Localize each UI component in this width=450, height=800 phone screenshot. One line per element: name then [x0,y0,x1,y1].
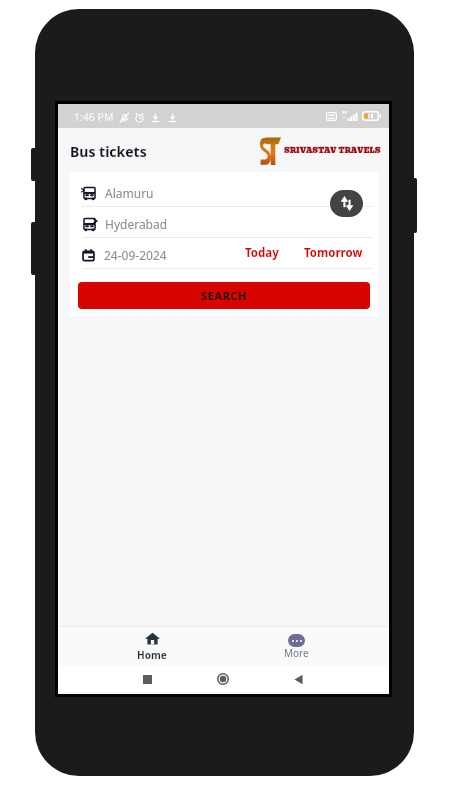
staticText: Hyderabad [105,216,168,232]
button[interactable]: Home [213,666,233,692]
button[interactable]: Tomorrow [304,245,363,261]
button[interactable]: Back [288,666,308,692]
button[interactable]: Today [245,245,279,261]
staticText: More [284,646,309,660]
staticText: Alamuru [105,185,154,201]
button[interactable]: Hyderabad [82,207,372,237]
button[interactable]: More [264,626,328,666]
staticText: 1:46 PM [74,110,114,124]
button[interactable]: Recents [137,666,157,692]
button[interactable]: 24-09-2024 [104,247,167,263]
staticText: SRIVASTAV TRAVELS [284,145,381,157]
button[interactable]: Home [120,626,184,666]
button[interactable]: Swap source and destination [330,190,363,217]
staticText: Home [137,648,167,662]
staticText: Bus tickets [70,142,147,161]
button[interactable]: Alamuru [82,176,372,206]
staticText: SEARCH [201,288,248,303]
button[interactable]: SEARCH [78,282,370,309]
